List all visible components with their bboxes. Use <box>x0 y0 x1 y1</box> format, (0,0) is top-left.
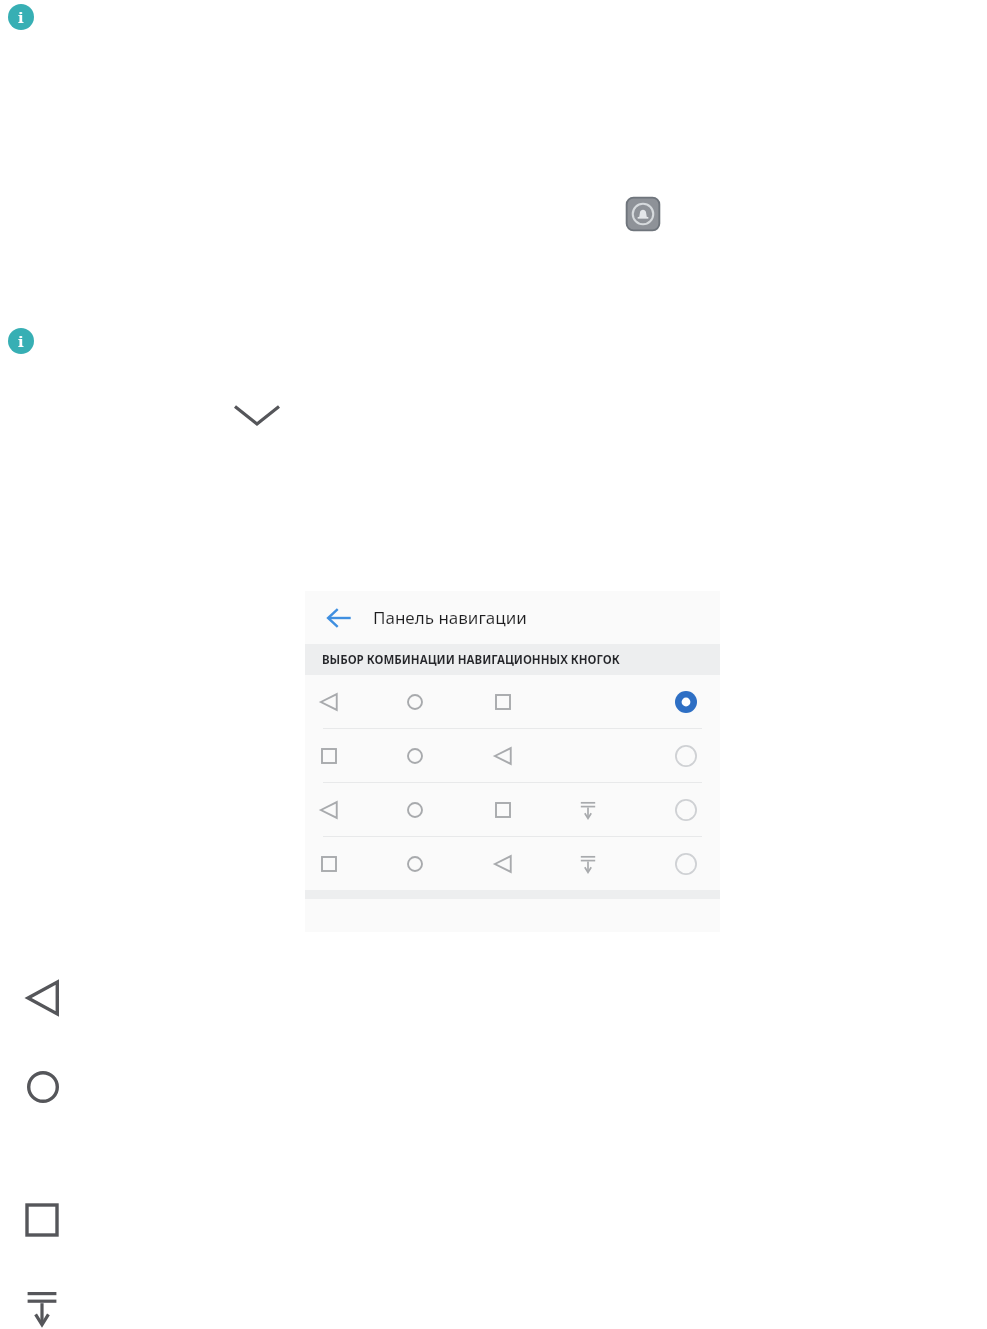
button[interactable]: Info <box>8 4 34 30</box>
button[interactable]: Back <box>24 979 62 1017</box>
button[interactable]: Expand <box>232 400 282 430</box>
button[interactable]: Back <box>326 605 352 631</box>
button[interactable] <box>305 675 720 729</box>
button[interactable] <box>305 837 720 890</box>
staticText: i <box>18 331 24 351</box>
button[interactable]: Home <box>24 1068 62 1106</box>
button[interactable]: App icon <box>624 195 662 233</box>
button[interactable]: Recents <box>24 1202 60 1238</box>
staticText: Панель навигации <box>373 606 527 629</box>
button[interactable] <box>305 783 720 837</box>
staticText: i <box>18 7 24 27</box>
button[interactable] <box>305 729 720 783</box>
button[interactable]: Notification panel <box>22 1288 62 1328</box>
staticText: ВЫБОР КОМБИНАЦИИ НАВИГАЦИОННЫХ КНОГОК <box>322 652 620 668</box>
button[interactable]: Back <box>305 591 720 644</box>
button[interactable]: Info <box>8 328 34 354</box>
